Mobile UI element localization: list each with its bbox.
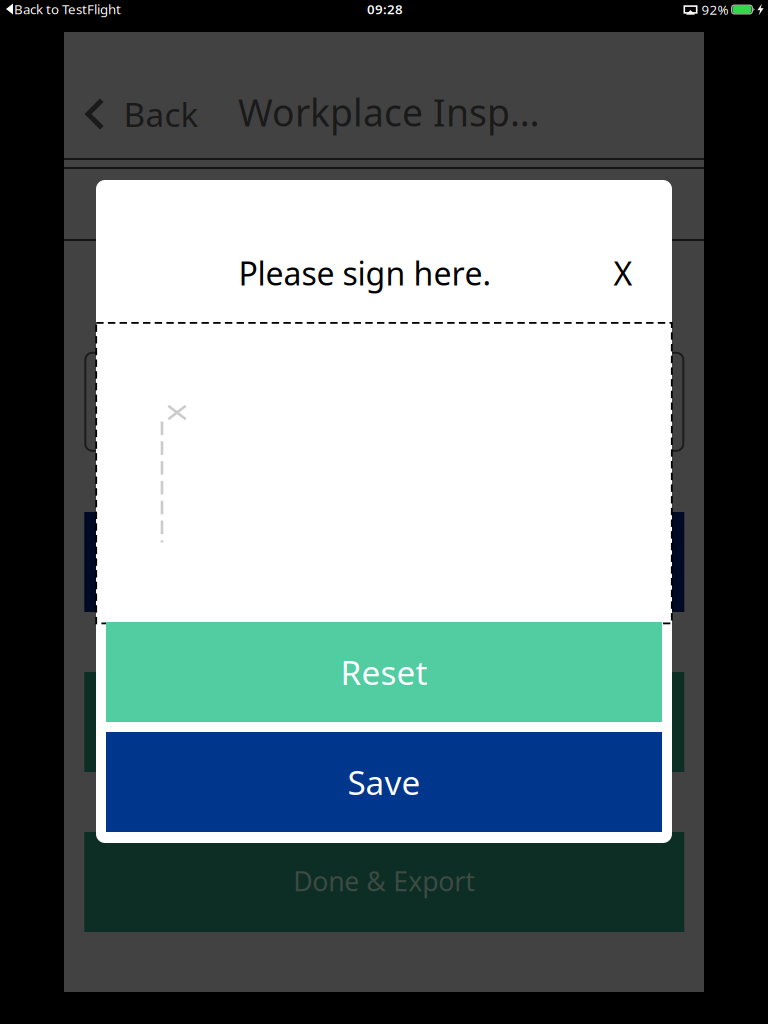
staticText: Done & Export [293,863,475,899]
button[interactable]: Done & Export [84,832,684,932]
staticText: 09:28 [367,0,403,18]
button[interactable] [84,512,684,612]
staticText: Back to TestFlight [14,0,121,18]
staticText: 92% [701,1,728,18]
staticText: Workplace Insp… [238,87,540,137]
staticText: Please sign here. [238,252,491,294]
button[interactable]: Back to TestFlight [1,0,126,21]
button[interactable] [84,672,684,772]
button[interactable]: Reset [106,622,662,722]
button[interactable]: Save [106,732,662,832]
staticText: Reset [340,650,427,694]
staticText: Back [123,92,198,136]
staticText: X [613,252,632,294]
button[interactable]: Close [599,249,647,297]
staticText: Save [347,760,420,804]
button[interactable]: Back [79,86,204,142]
